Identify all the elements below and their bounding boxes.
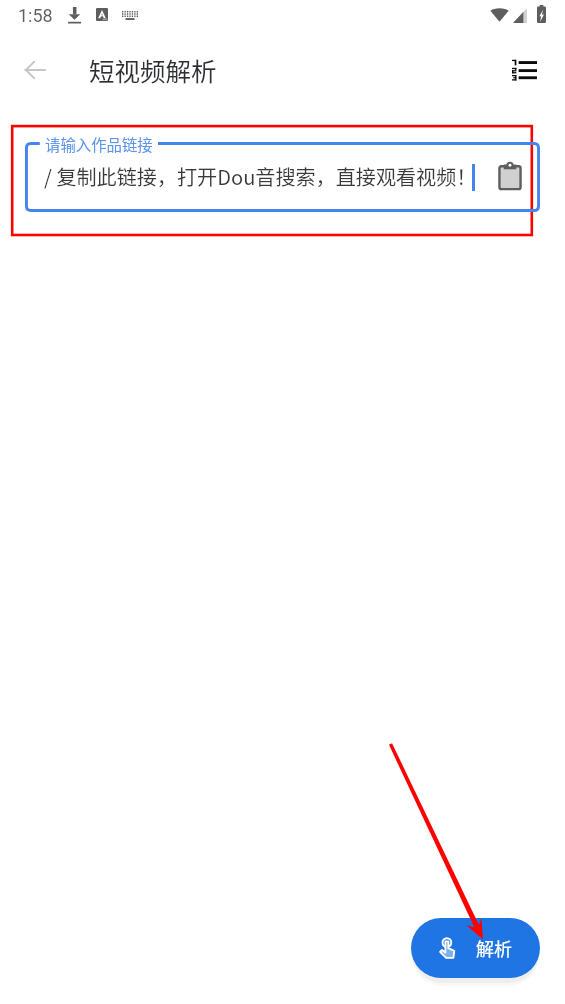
staticText: 请输入作品链接 [45,133,153,155]
staticText: 1:58 [18,5,53,26]
button[interactable]: Back [13,48,57,92]
button[interactable]: History list [502,48,546,92]
staticText: 解析 [476,935,512,961]
button[interactable]: Paste [495,161,525,191]
button[interactable]: 解析 [411,918,540,978]
staticText: 短视频解析 [89,51,217,88]
staticText: / 复制此链接，打开Dou音搜索，直接观看视频！ [44,162,477,191]
